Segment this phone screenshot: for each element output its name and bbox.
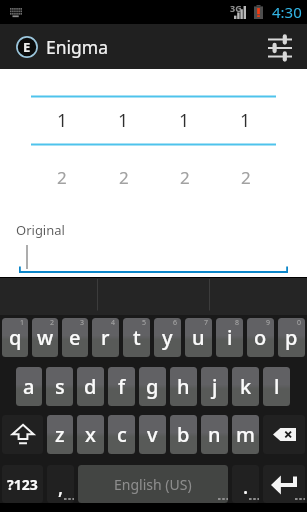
button[interactable]: t — [123, 318, 150, 357]
staticText: English (US) — [114, 475, 192, 494]
staticText: s — [55, 373, 65, 400]
button[interactable]: h — [170, 367, 197, 406]
button[interactable]: g — [139, 367, 166, 406]
staticText: 2 — [57, 166, 67, 189]
button[interactable]: a — [16, 367, 42, 406]
staticText: 6 — [173, 318, 178, 328]
staticText: d — [84, 373, 97, 400]
staticText: 3G — [230, 2, 242, 14]
button[interactable]: z — [47, 415, 73, 454]
staticText: b — [177, 421, 190, 448]
button[interactable]: x — [77, 415, 104, 454]
button[interactable]: l — [263, 367, 290, 406]
staticText: x — [85, 421, 96, 448]
button[interactable]: b — [170, 415, 197, 454]
button[interactable]: i — [216, 318, 243, 357]
button[interactable] — [263, 465, 305, 503]
staticText: k — [240, 373, 252, 400]
staticText: r — [101, 324, 110, 351]
staticText: 3 — [80, 318, 85, 328]
button[interactable]: s — [46, 367, 73, 406]
button[interactable]: w — [32, 318, 58, 357]
button[interactable] — [263, 415, 305, 454]
staticText: 1 — [57, 108, 68, 133]
staticText: Original — [16, 221, 65, 239]
staticText: u — [192, 324, 205, 351]
button[interactable]: u — [185, 318, 212, 357]
staticText: 9 — [266, 318, 271, 328]
button[interactable]: f — [108, 367, 135, 406]
staticText: j — [212, 373, 218, 400]
staticText: 7 — [204, 318, 209, 328]
button[interactable]: y — [154, 318, 181, 357]
button[interactable]: r — [92, 318, 119, 357]
staticText: 2 — [241, 166, 251, 189]
button[interactable]: e — [62, 318, 88, 357]
staticText: Enigma — [46, 35, 109, 59]
button[interactable]: c — [108, 415, 135, 454]
staticText: o — [254, 324, 267, 351]
staticText: c — [117, 421, 127, 448]
staticText: n — [208, 421, 221, 448]
staticText: 2 — [119, 166, 129, 189]
staticText: 2 — [180, 166, 190, 189]
staticText: 1 — [20, 318, 25, 328]
button[interactable]: , — [47, 465, 74, 503]
button[interactable]: ?123 — [2, 465, 43, 503]
button[interactable]: j — [201, 367, 228, 406]
staticText: 4 — [111, 318, 116, 328]
button[interactable]: q — [2, 318, 28, 357]
staticText: h — [177, 373, 190, 400]
staticText: 5 — [142, 318, 147, 328]
staticText: i — [227, 324, 233, 351]
staticText: 1 — [118, 108, 129, 133]
staticText: p — [285, 324, 298, 351]
button[interactable]: . — [232, 465, 259, 503]
staticText: , — [58, 474, 64, 500]
button[interactable]: k — [232, 367, 259, 406]
staticText: z — [55, 421, 65, 448]
button[interactable]: d — [77, 367, 104, 406]
staticText: f — [118, 373, 126, 400]
staticText: q — [9, 324, 22, 351]
staticText: 0 — [297, 318, 302, 328]
button[interactable]: English (US) — [78, 465, 228, 503]
button[interactable]: Settings — [260, 25, 300, 70]
staticText: v — [147, 421, 158, 448]
staticText: t — [133, 324, 141, 351]
staticText: E — [23, 38, 31, 56]
staticText: w — [37, 324, 54, 351]
staticText: a — [23, 373, 35, 400]
button[interactable]: p — [278, 318, 305, 357]
button[interactable]: n — [201, 415, 228, 454]
button[interactable] — [2, 415, 43, 454]
button[interactable]: m — [232, 415, 259, 454]
staticText: 8 — [235, 318, 240, 328]
staticText: . — [243, 474, 249, 500]
staticText: 4:30 — [272, 2, 302, 22]
button[interactable]: o — [247, 318, 274, 357]
staticText: ?123 — [7, 475, 38, 494]
staticText: 1 — [240, 108, 251, 133]
staticText: 2 — [50, 318, 55, 328]
staticText: 1 — [179, 108, 190, 133]
staticText: m — [236, 421, 255, 448]
staticText: g — [146, 373, 159, 400]
button[interactable]: v — [139, 415, 166, 454]
staticText: e — [69, 324, 81, 351]
staticText: y — [162, 324, 173, 351]
staticText: l — [274, 373, 280, 400]
